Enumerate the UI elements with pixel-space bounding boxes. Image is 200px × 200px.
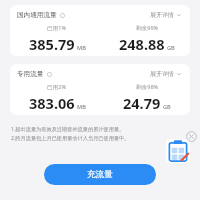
staticText: 383.06 <box>29 93 75 113</box>
staticText: 385.79 <box>29 34 75 54</box>
staticText: 1.超出流量为有效及过期套外流量的累计使用量。 <box>11 125 125 132</box>
staticText: 剩余99% <box>136 24 159 32</box>
staticText: 展开详情 <box>150 11 174 19</box>
staticText: 剩余98% <box>136 83 159 91</box>
staticText: GB <box>163 103 171 111</box>
button[interactable]: 国内通用流量 <box>10 5 190 56</box>
button[interactable]: 充流量 <box>44 164 156 185</box>
button[interactable]: 专用流量 <box>10 64 190 115</box>
staticText: 2.跨月流量包上月已使用量会计入当月已使用量中。 <box>11 134 130 141</box>
staticText: GB <box>167 44 175 52</box>
button[interactable]: 展开详情 <box>149 10 183 20</box>
button[interactable]: 流量账单 <box>166 139 190 163</box>
staticText: 24.79 <box>123 93 161 113</box>
staticText: 248.88 <box>119 34 165 54</box>
button[interactable]: 展开详情 <box>149 69 183 79</box>
staticText: 充流量 <box>87 169 113 180</box>
staticText: 已用2% <box>47 83 67 91</box>
button[interactable]: 关闭 <box>186 131 197 142</box>
staticText: 展开详情 <box>150 70 174 78</box>
staticText: 国内通用流量 <box>17 11 57 19</box>
staticText: 专用流量 <box>17 70 44 78</box>
staticText: MB <box>77 103 86 111</box>
staticText: MB <box>77 44 86 52</box>
staticText: 已用1% <box>47 24 67 32</box>
